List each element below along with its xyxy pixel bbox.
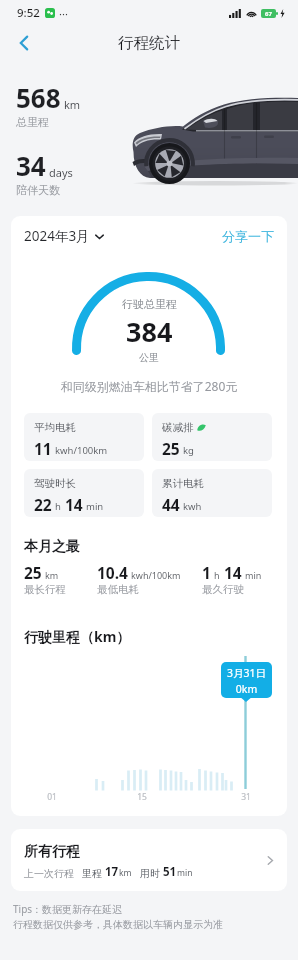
staticText: min: [177, 867, 193, 879]
staticText: 行程统计: [118, 33, 180, 53]
staticText: Tips：数据更新存在延迟: [13, 902, 123, 916]
staticText: km: [64, 97, 81, 112]
staticText: 15: [132, 791, 152, 803]
button[interactable]: 驾驶时长: [24, 469, 144, 517]
staticText: 驾驶时长: [34, 477, 76, 490]
staticText: 25: [162, 438, 180, 459]
staticText: 14: [65, 494, 83, 515]
staticText: 2024年3月: [24, 227, 90, 245]
staticText: km: [119, 867, 132, 879]
staticText: 10.4: [97, 562, 128, 583]
staticText: 11: [34, 438, 52, 459]
button[interactable]: Back: [8, 27, 40, 59]
staticText: 01: [42, 791, 62, 803]
staticText: 3月31日: [221, 666, 272, 680]
button[interactable]: 累计电耗: [152, 469, 272, 517]
staticText: 里程: [82, 867, 102, 880]
staticText: 分享一下: [222, 228, 274, 244]
button[interactable]: 碳减排: [152, 413, 272, 461]
staticText: 25: [24, 562, 42, 583]
staticText: kwh/100km: [55, 444, 108, 457]
staticText: 和同级别燃油车相比节省了280元: [11, 378, 287, 394]
button[interactable]: 平均电耗: [24, 413, 144, 461]
staticText: 31: [236, 791, 256, 803]
staticText: 本月之最: [24, 538, 80, 556]
staticText: h: [55, 500, 61, 513]
staticText: 平均电耗: [34, 421, 76, 434]
staticText: 所有行程: [24, 843, 80, 861]
staticText: 最久行驶: [202, 583, 244, 596]
staticText: 用时: [140, 867, 160, 880]
staticText: km: [45, 569, 59, 581]
staticText: min: [86, 500, 104, 513]
staticText: ···: [59, 6, 68, 21]
staticText: 34: [16, 148, 46, 183]
staticText: 行驶总里程: [122, 297, 177, 311]
staticText: 0km: [221, 682, 272, 696]
staticText: 累计电耗: [162, 477, 204, 490]
staticText: days: [49, 165, 73, 180]
staticText: 14: [224, 562, 242, 583]
button[interactable]: 所有行程: [11, 829, 287, 891]
staticText: 384: [126, 313, 173, 350]
staticText: 22: [34, 494, 52, 515]
button[interactable]: 分享一下: [222, 228, 274, 244]
staticText: 行驶里程（km）: [24, 627, 131, 646]
staticText: 公里: [139, 351, 159, 364]
staticText: min: [245, 569, 262, 581]
staticText: 最长行程: [24, 583, 66, 596]
staticText: 9:52: [17, 5, 40, 21]
staticText: 1: [202, 562, 211, 583]
staticText: 67: [265, 10, 272, 18]
button[interactable]: 2024年3月: [24, 227, 104, 245]
staticText: h: [214, 569, 220, 581]
staticText: kwh/100km: [131, 569, 181, 581]
staticText: 44: [162, 494, 180, 515]
staticText: 陪伴天数: [16, 183, 60, 197]
staticText: kwh: [183, 500, 202, 513]
staticText: kg: [183, 444, 194, 457]
staticText: 上一次行程: [24, 867, 74, 880]
staticText: 17: [105, 864, 119, 880]
staticText: 568: [16, 80, 61, 115]
staticText: 碳减排: [162, 421, 194, 434]
staticText: 总里程: [16, 115, 49, 129]
staticText: 最低电耗: [97, 583, 139, 596]
staticText: 51: [163, 864, 177, 880]
staticText: 行程数据仅供参考，具体数据以车辆内显示为准: [13, 918, 223, 931]
